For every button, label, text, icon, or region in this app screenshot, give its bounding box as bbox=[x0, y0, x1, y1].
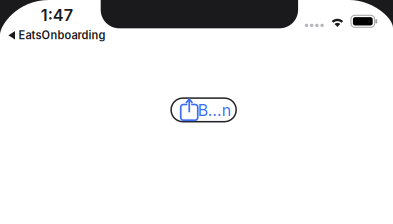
staticText: EatsOnboarding bbox=[19, 29, 106, 42]
staticText: B…n bbox=[198, 100, 231, 120]
button[interactable]: EatsOnboarding bbox=[7, 29, 107, 42]
staticText: 1:47 bbox=[41, 5, 73, 25]
button[interactable]: B…n bbox=[171, 98, 236, 122]
